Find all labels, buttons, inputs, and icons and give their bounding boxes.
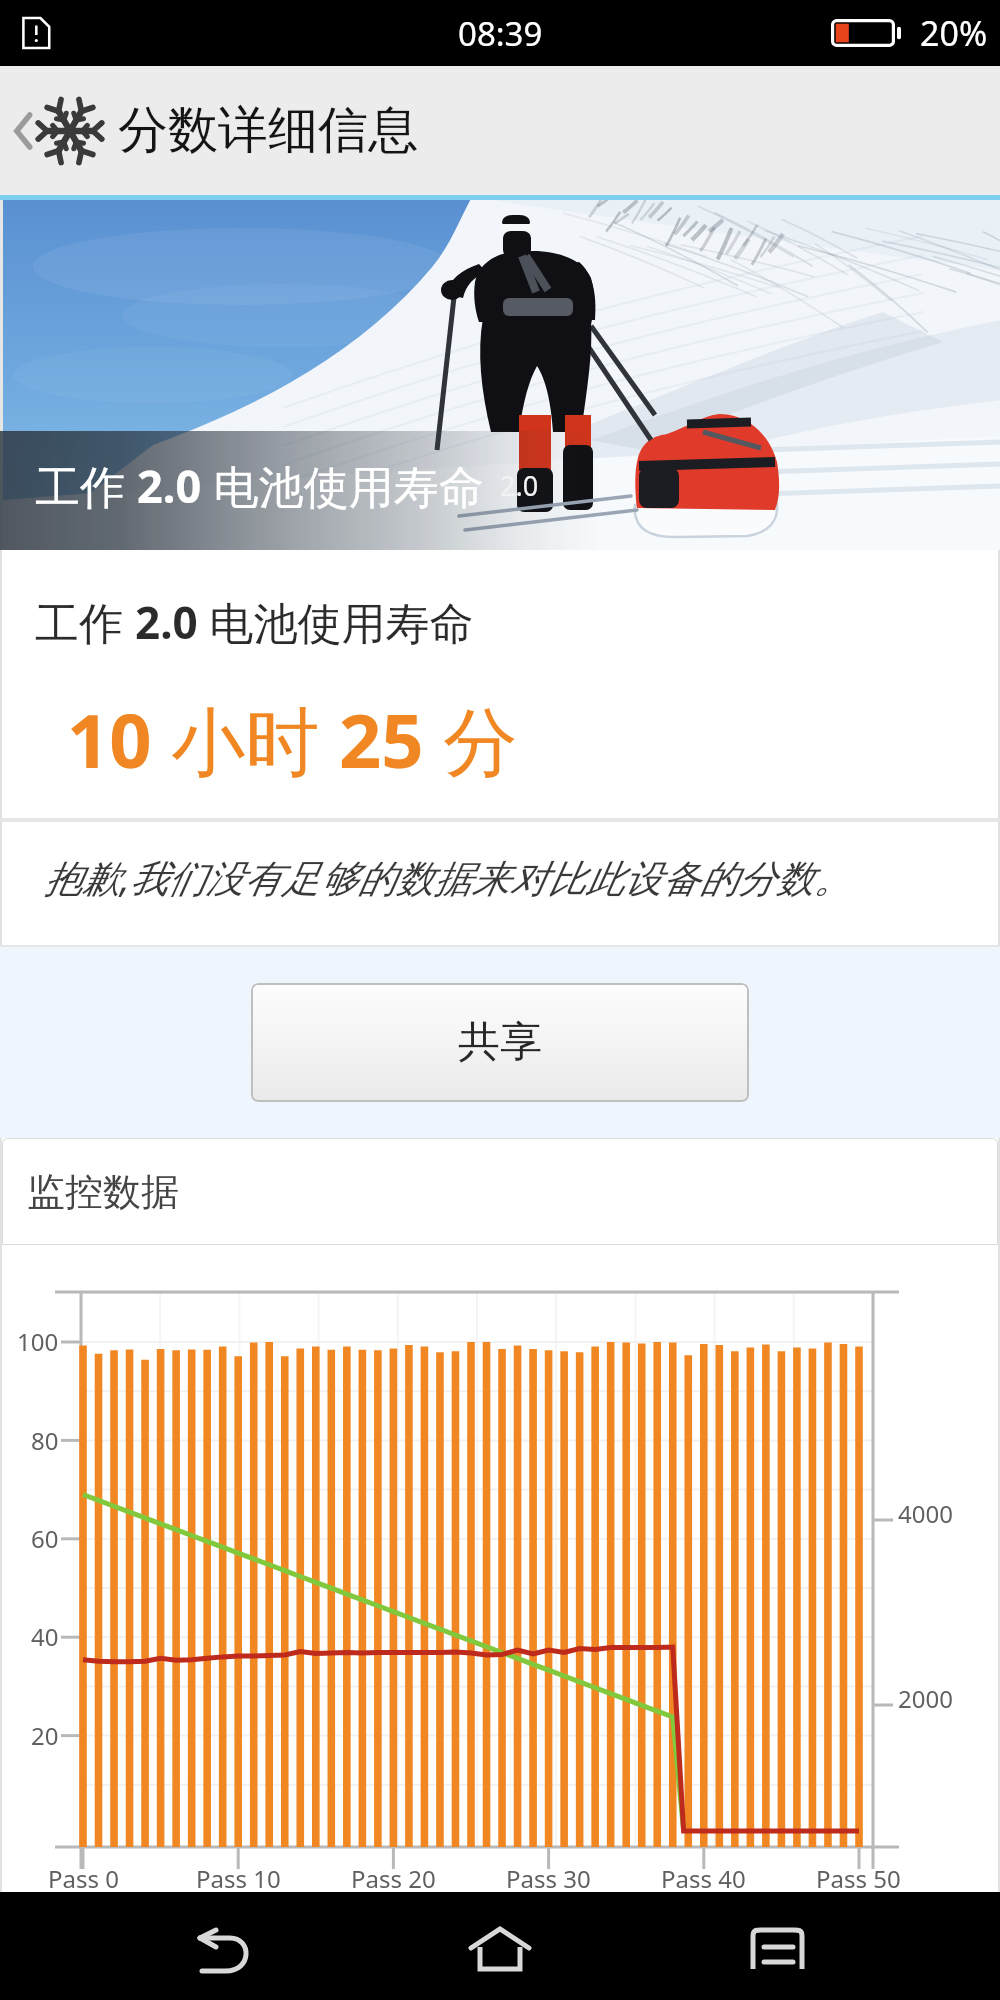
staticText: 40: [31, 1620, 59, 1653]
staticText: 4000: [898, 1497, 953, 1530]
staticText: 工作: [35, 455, 137, 516]
staticText: 小时: [152, 689, 339, 790]
staticText: 监控数据: [27, 1168, 179, 1216]
staticText: 分: [424, 689, 518, 790]
button[interactable]: Recent apps: [658, 1892, 898, 2000]
staticText: 100: [17, 1325, 59, 1358]
staticText: 电池使用寿命: [202, 455, 484, 516]
staticText: Pass 30: [506, 1862, 591, 1895]
staticText: 20: [31, 1719, 59, 1752]
staticText: Pass 50: [816, 1862, 901, 1895]
staticText: 共享: [458, 1016, 542, 1069]
staticText: 60: [31, 1522, 59, 1555]
staticText: 80: [31, 1424, 59, 1457]
staticText: 2.0: [135, 592, 198, 652]
button[interactable]: Back: [103, 1892, 343, 2000]
staticText: 2000: [898, 1682, 953, 1715]
staticText: 电池使用寿命: [198, 592, 474, 652]
staticText: 20%: [920, 10, 988, 56]
staticText: Pass 40: [661, 1862, 746, 1895]
button[interactable]: 分数详细信息: [0, 66, 1000, 195]
staticText: 2.0: [137, 455, 202, 516]
staticText: Pass 20: [351, 1862, 436, 1895]
staticText: 分数详细信息: [118, 99, 418, 162]
staticText: 2.0: [500, 467, 539, 504]
staticText: Pass 10: [196, 1862, 281, 1895]
staticText: Pass 0: [48, 1862, 119, 1895]
staticText: 10: [67, 689, 152, 790]
button[interactable]: Home: [380, 1892, 620, 2000]
staticText: 08:39: [458, 11, 543, 56]
staticText: 工作: [35, 592, 135, 652]
staticText: 25: [339, 689, 424, 790]
button[interactable]: 共享: [251, 983, 749, 1102]
staticText: 抱歉,我们没有足够的数据来对比此设备的分数。: [44, 851, 852, 903]
